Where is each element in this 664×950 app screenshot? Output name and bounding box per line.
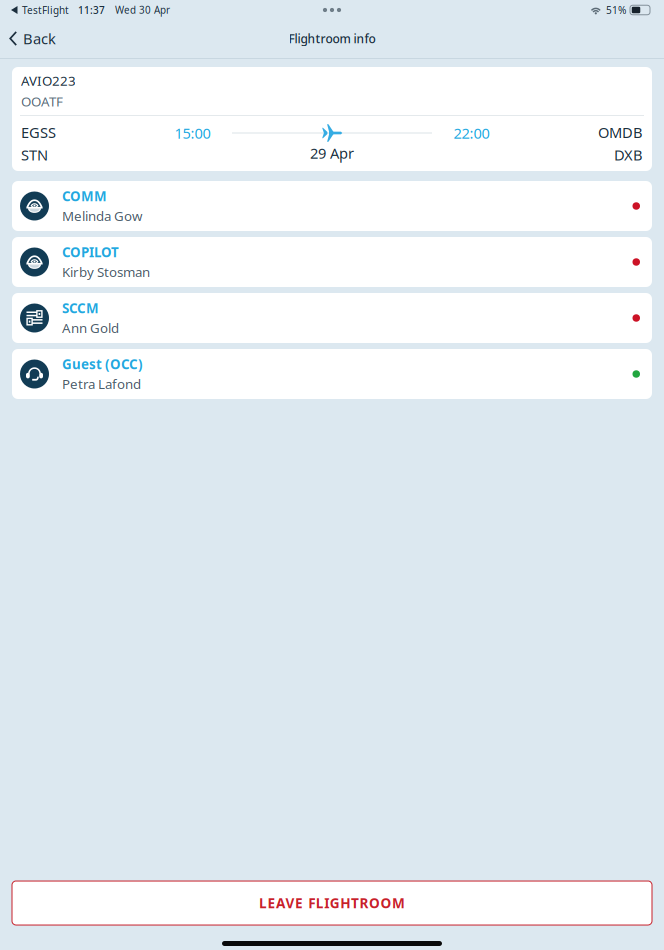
staticText: 15:00	[174, 123, 210, 143]
staticText: DXB	[614, 145, 643, 164]
staticText: AVIO223	[21, 72, 76, 89]
staticText: Back	[23, 29, 56, 48]
staticText: OOATF	[21, 92, 63, 110]
staticText: STN	[21, 145, 48, 164]
staticText: Ann Gold	[62, 319, 119, 337]
button[interactable]: SCCM	[12, 293, 652, 343]
staticText: 22:00	[453, 123, 489, 143]
staticText: Guest (OCC)	[62, 355, 143, 373]
staticText: Petra Lafond	[62, 375, 141, 393]
button[interactable]: COPILOT	[12, 237, 652, 287]
staticText: TestFlight	[22, 3, 69, 17]
staticText: Wed 30 Apr	[115, 3, 170, 17]
staticText: Melinda Gow	[62, 207, 142, 225]
staticText: Flightroom info	[288, 30, 375, 46]
staticText: SCCM	[62, 299, 99, 317]
button[interactable]: LEAVE FLIGHTROOM	[12, 881, 652, 925]
button[interactable]: Back	[0, 25, 56, 54]
staticText: 11:37	[78, 3, 105, 17]
button[interactable]: Guest (OCC)	[12, 349, 652, 399]
staticText: 51%	[606, 3, 626, 17]
staticText: COMM	[62, 187, 107, 205]
button[interactable]: COMM	[12, 181, 652, 231]
staticText: Kirby Stosman	[62, 263, 150, 281]
staticText: LEAVE FLIGHTROOM	[259, 894, 405, 912]
staticText: EGSS	[21, 122, 56, 142]
staticText: 29 Apr	[310, 143, 354, 163]
staticText: OMDB	[598, 122, 643, 142]
staticText: COPILOT	[62, 243, 119, 261]
